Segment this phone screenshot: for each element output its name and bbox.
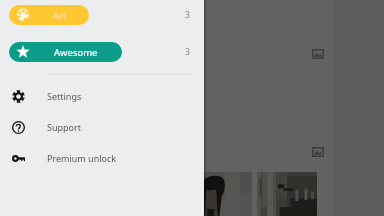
button[interactable] xyxy=(196,172,252,216)
button[interactable]: Awesome xyxy=(9,42,122,62)
button[interactable] xyxy=(257,172,317,216)
staticText: 3 xyxy=(185,9,190,21)
button[interactable]: Support xyxy=(0,112,204,142)
staticText: Awesome xyxy=(54,46,98,59)
button[interactable]: Settings xyxy=(0,81,204,111)
button[interactable]: Image placeholder xyxy=(312,49,324,59)
staticText: Premium unlock xyxy=(47,152,117,164)
button[interactable]: Image placeholder xyxy=(312,147,324,157)
staticText: Art xyxy=(53,9,67,22)
button[interactable]: Art xyxy=(9,5,89,25)
staticText: 3 xyxy=(185,46,190,58)
staticText: Settings xyxy=(47,90,82,102)
staticText: Support xyxy=(47,121,81,133)
button[interactable]: Premium unlock xyxy=(0,143,204,173)
